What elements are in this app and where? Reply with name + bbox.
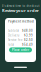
staticText: It's almost time to check out [1,4,39,8]
staticText: $54.49 [22,43,33,46]
staticText: Total [8,43,14,46]
staticText: Delivery [8,34,19,37]
staticText: $2.50 [24,38,33,42]
staticText: Review your order [2,8,39,13]
button[interactable]: Place order [9,47,32,52]
staticText: Service fee [8,38,23,42]
staticText: $48.00 [22,29,33,32]
staticText: Subtotal [8,29,19,32]
staticText: Payment method [8,20,34,23]
staticText: Place order [12,48,29,52]
staticText: $3.99 [24,34,33,37]
